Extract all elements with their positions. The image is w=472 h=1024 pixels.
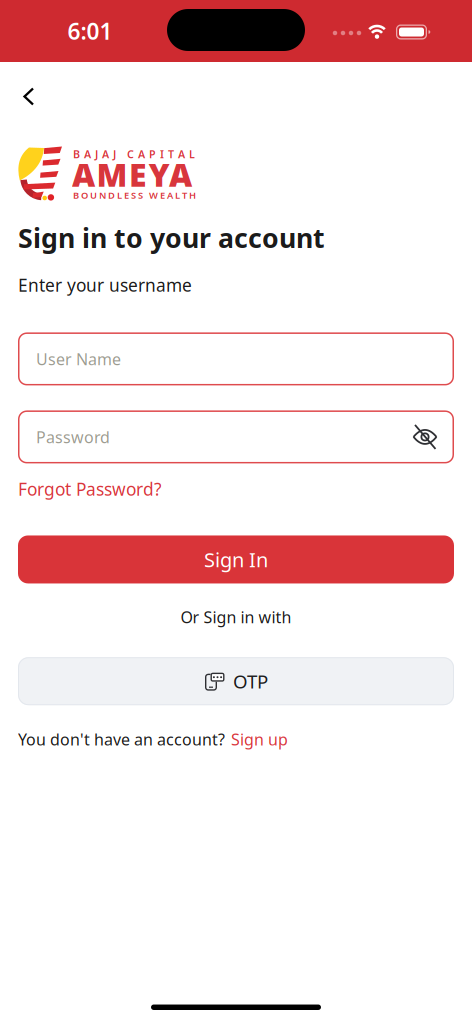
staticText: Sign in to your account <box>18 220 325 255</box>
button[interactable]: OTP <box>18 657 454 705</box>
button[interactable]: Show password <box>412 424 454 450</box>
button[interactable]: Sign In <box>18 535 454 583</box>
staticText: Password <box>36 426 110 447</box>
staticText: OTP <box>233 669 268 694</box>
staticText: AMEYA <box>72 153 192 195</box>
button[interactable]: Forgot Password? <box>18 477 162 500</box>
textField[interactable]: User Name <box>36 348 454 369</box>
button[interactable]: Back <box>18 87 45 106</box>
textField[interactable]: Password <box>36 426 454 447</box>
staticText: Sign In <box>204 546 268 573</box>
staticText: B O U N D L E S S W E A L T H <box>73 189 196 201</box>
staticText: Enter your username <box>18 273 192 296</box>
staticText: You don't have an account? <box>18 729 225 750</box>
staticText: B A J A J C A P I T A L <box>73 147 195 161</box>
staticText: Or Sign in with <box>180 606 291 628</box>
staticText: User Name <box>36 348 121 369</box>
staticText: 6:01 <box>67 16 112 46</box>
staticText: Sign up <box>231 729 288 750</box>
staticText: Forgot Password? <box>18 477 162 500</box>
button[interactable]: Sign up <box>231 729 288 750</box>
